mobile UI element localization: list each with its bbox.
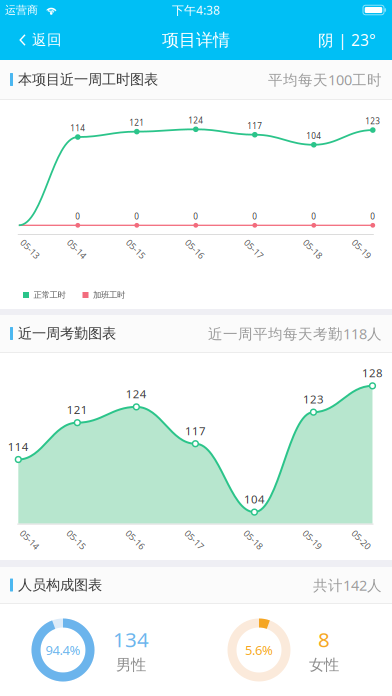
staticText: 114 — [70, 122, 85, 134]
staticText: 人员构成图表 — [18, 576, 102, 594]
staticText: 05-18 — [301, 243, 324, 255]
staticText: 05-15 — [124, 243, 147, 255]
staticText: 0 — [134, 211, 139, 222]
staticText: 05-16 — [183, 243, 206, 255]
staticText: 124 — [126, 386, 147, 402]
staticText: 05-19 — [350, 243, 373, 255]
staticText: 121 — [129, 117, 144, 128]
staticText: 0 — [370, 211, 375, 222]
staticText: 128 — [362, 365, 383, 381]
staticText: 共计142人 — [313, 575, 382, 595]
button[interactable]: 阴 | 23° — [306, 20, 392, 60]
staticText: 124 — [188, 115, 203, 126]
staticText: 05-16 — [124, 533, 147, 546]
staticText: 117 — [247, 120, 262, 131]
staticText: 05-13 — [19, 243, 42, 255]
staticText: 0 — [311, 211, 316, 222]
staticText: 0 — [252, 211, 257, 222]
staticText: 104 — [244, 491, 265, 507]
staticText: 114 — [8, 439, 29, 454]
staticText: 117 — [185, 423, 206, 438]
staticText: 0 — [75, 211, 80, 222]
staticText: 平均每天100工时 — [268, 70, 382, 89]
staticText: 104 — [306, 130, 321, 141]
staticText: 本项目近一周工时图表 — [18, 71, 158, 88]
staticText: 05-15 — [65, 533, 88, 546]
staticText: 123 — [303, 391, 324, 407]
staticText: 05-20 — [350, 533, 373, 546]
staticText: 项目详情 — [162, 29, 230, 51]
staticText: 8 — [318, 625, 330, 653]
staticText: 05-14 — [65, 243, 88, 255]
staticText: 134 — [113, 625, 149, 653]
staticText: 女性 — [309, 655, 339, 675]
staticText: 下午4:38 — [172, 2, 220, 18]
staticText: 05-17 — [242, 243, 265, 255]
staticText: 男性 — [116, 655, 146, 675]
staticText: 0 — [193, 211, 198, 222]
button[interactable]: 返回 — [0, 20, 74, 60]
staticText: 近一周平均每天考勤118人 — [208, 324, 382, 343]
staticText: 返回 — [32, 31, 62, 49]
staticText: 5.6% — [245, 641, 273, 659]
staticText: 阴 | 23° — [318, 29, 376, 50]
staticText: 运营商 — [5, 3, 38, 17]
staticText: 正常工时 — [33, 290, 65, 300]
staticText: 05-18 — [242, 533, 265, 546]
staticText: 05-14 — [18, 533, 41, 546]
staticText: 94.4% — [45, 641, 80, 659]
staticText: 05-19 — [301, 533, 324, 546]
staticText: 121 — [67, 402, 88, 417]
staticText: 加班工时 — [93, 290, 125, 300]
staticText: 近一周考勤图表 — [18, 325, 116, 342]
staticText: 05-17 — [183, 533, 206, 546]
staticText: 123 — [365, 115, 380, 127]
